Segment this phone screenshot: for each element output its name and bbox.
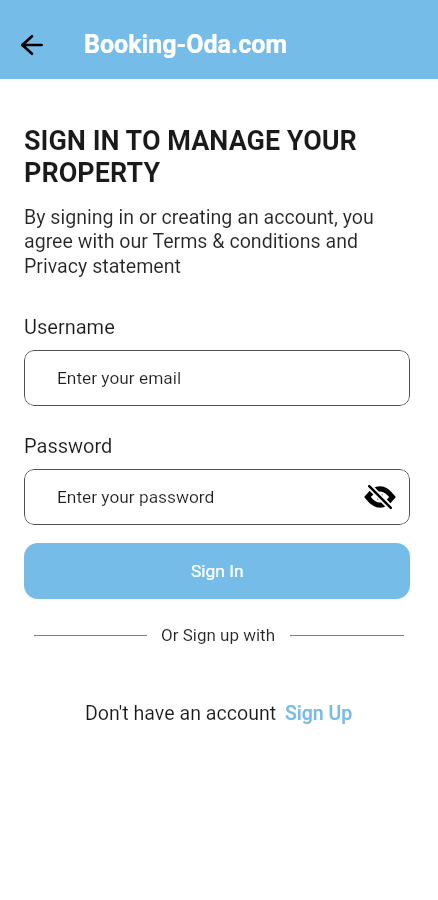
button[interactable]: Enter your email (24, 350, 410, 406)
button[interactable]: Enter your password (24, 469, 410, 525)
staticText: Sign In (191, 561, 244, 581)
staticText: Booking-Oda.com (84, 30, 288, 59)
button[interactable]: Sign In (24, 543, 410, 599)
staticText: Don't have an account (85, 702, 277, 725)
staticText: Username (24, 315, 115, 338)
staticText: Sign Up (285, 702, 353, 725)
staticText: Enter your email (57, 368, 182, 388)
button[interactable]: Back (10, 23, 54, 67)
staticText: Enter your password (57, 487, 215, 507)
staticText: SIGN IN TO MANAGE YOUR PROPERTY (24, 125, 384, 188)
staticText: Or Sign up with (161, 625, 276, 645)
button[interactable]: Sign Up (285, 702, 353, 725)
staticText: Password (24, 434, 113, 457)
button[interactable]: Show password (363, 480, 397, 514)
staticText: By signing in or creating an account, yo… (24, 206, 380, 278)
